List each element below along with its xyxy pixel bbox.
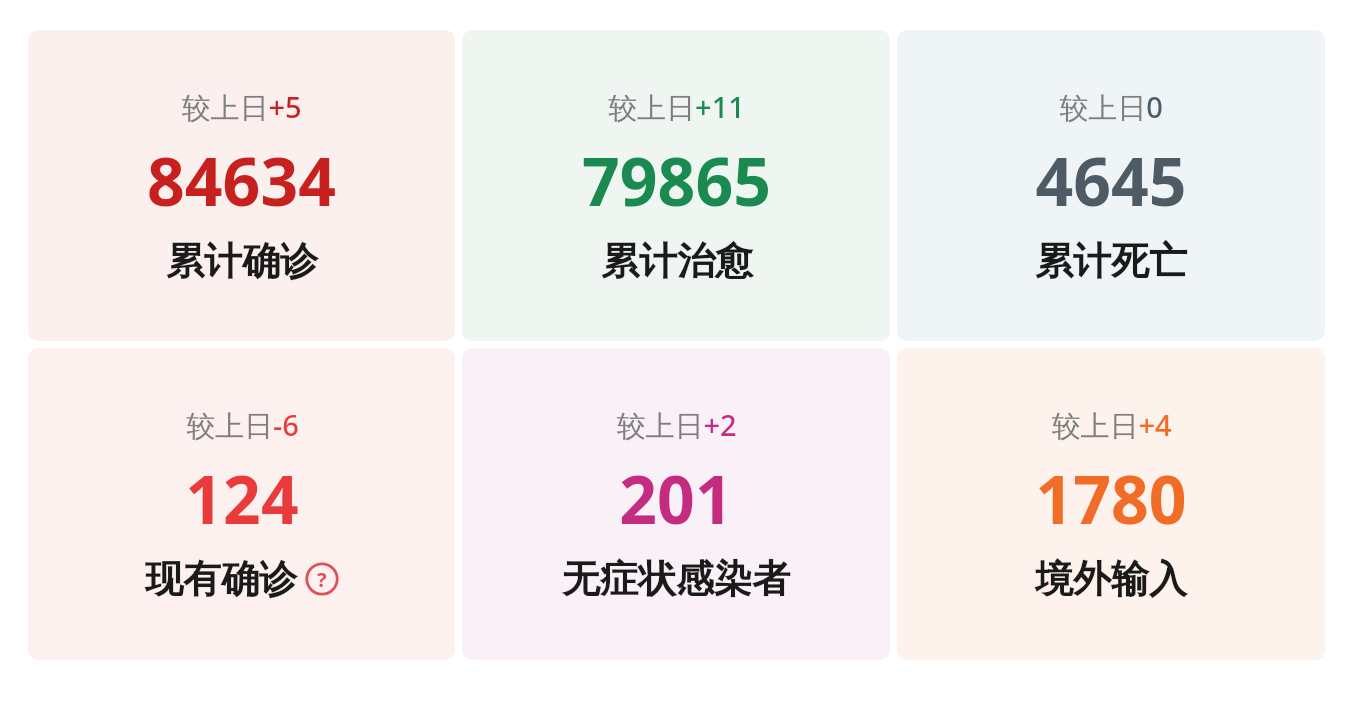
button[interactable]: 较上日+11	[462, 30, 890, 341]
staticText: 较上日0	[1059, 87, 1163, 127]
staticText: 201	[619, 453, 733, 543]
staticText: ?	[317, 566, 327, 593]
staticText: 84634	[147, 135, 336, 225]
staticText: 1780	[1035, 453, 1187, 543]
staticText: 较上日+2	[616, 405, 737, 445]
staticText: 无症状感染者	[562, 555, 790, 603]
staticText: 较上日+4	[1051, 405, 1172, 445]
staticText: 现有确诊	[145, 555, 297, 603]
button[interactable]: 较上日+4	[897, 348, 1325, 660]
staticText: 4645	[1035, 135, 1187, 225]
staticText: 较上日-6	[186, 405, 299, 445]
button[interactable]: 较上日0	[897, 30, 1325, 341]
button[interactable]: About current confirmed cases	[305, 562, 339, 596]
staticText: 境外输入	[1035, 555, 1187, 603]
staticText: 累计确诊	[166, 237, 318, 285]
staticText: 较上日+11	[608, 87, 745, 127]
button[interactable]: 较上日-6	[28, 348, 455, 660]
button[interactable]: 较上日+5	[28, 30, 455, 341]
staticText: 79865	[582, 135, 771, 225]
button[interactable]: 较上日+2	[462, 348, 890, 660]
staticText: 较上日+5	[181, 87, 302, 127]
staticText: 累计治愈	[601, 237, 753, 285]
staticText: 累计死亡	[1035, 237, 1187, 285]
staticText: 124	[185, 453, 299, 543]
